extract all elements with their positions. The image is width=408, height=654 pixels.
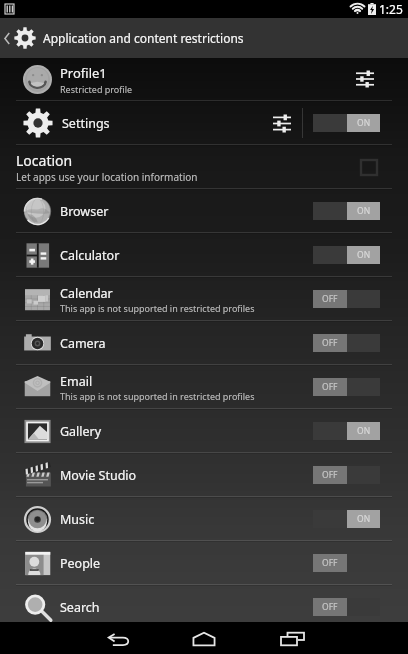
button[interactable]: OFF	[313, 334, 380, 352]
button[interactable]: ON	[313, 114, 380, 132]
staticText: This app is not supported in restricted …	[60, 390, 255, 402]
button[interactable]: Settings options	[262, 102, 302, 144]
button[interactable]: OFF	[313, 290, 380, 308]
staticText: ON	[357, 205, 371, 217]
button[interactable]: Location checkbox	[349, 146, 389, 188]
staticText: This app is not supported in restricted …	[60, 302, 255, 314]
staticText: 1:25	[379, 1, 403, 17]
staticText: Let apps use your location information	[16, 170, 198, 184]
button[interactable]: Calculator	[0, 234, 408, 276]
staticText: OFF	[322, 293, 338, 305]
button[interactable]: Camera	[0, 322, 408, 364]
button[interactable]: ON	[313, 510, 380, 528]
button[interactable]: OFF	[313, 378, 380, 396]
staticText: OFF	[322, 337, 338, 349]
staticText: ON	[357, 513, 371, 525]
button[interactable]: ON	[313, 202, 380, 220]
staticText: Gallery	[60, 423, 102, 440]
staticText: OFF	[322, 381, 338, 393]
staticText: Settings	[62, 115, 262, 132]
button[interactable]: Profile1	[0, 58, 408, 100]
staticText: People	[60, 555, 101, 572]
staticText: Browser	[60, 203, 109, 220]
staticText: Calendar	[60, 285, 113, 302]
button[interactable]: Recent apps	[261, 622, 323, 654]
button[interactable]: OFF	[313, 598, 380, 616]
button[interactable]: OFF	[313, 466, 380, 484]
staticText: ON	[357, 117, 371, 129]
button[interactable]: Movie Studio	[0, 454, 408, 496]
button[interactable]: People	[0, 542, 408, 584]
button[interactable]: Email	[0, 366, 408, 408]
button[interactable]: OFF	[313, 554, 380, 572]
button[interactable]: Browser	[0, 190, 408, 232]
staticText: Restricted profile	[60, 83, 133, 95]
button[interactable]: Music	[0, 498, 408, 540]
staticText: OFF	[322, 469, 338, 481]
button[interactable]: Profile settings	[343, 58, 387, 100]
staticText: OFF	[322, 557, 338, 569]
staticText: Application and content restrictions	[43, 30, 244, 46]
staticText: Search	[60, 599, 100, 616]
staticText: Email	[60, 373, 93, 390]
button[interactable]: Location	[0, 146, 408, 188]
button[interactable]: ON	[313, 246, 380, 264]
button[interactable]: Back	[88, 622, 150, 654]
button[interactable]: Navigate up	[0, 18, 408, 58]
button[interactable]: Settings	[0, 102, 408, 144]
staticText: OFF	[322, 601, 338, 613]
staticText: ON	[357, 425, 371, 437]
staticText: Location	[16, 151, 73, 170]
staticText: Profile1	[60, 64, 107, 82]
staticText: Calculator	[60, 247, 120, 264]
staticText: Music	[60, 511, 95, 528]
button[interactable]: Gallery	[0, 410, 408, 452]
button[interactable]: Home	[173, 622, 235, 654]
button[interactable]: Calendar	[0, 278, 408, 320]
staticText: ON	[357, 249, 371, 261]
staticText: Movie Studio	[60, 467, 137, 484]
button[interactable]: Search	[0, 586, 408, 628]
button[interactable]: ON	[313, 422, 380, 440]
staticText: Camera	[60, 335, 106, 352]
